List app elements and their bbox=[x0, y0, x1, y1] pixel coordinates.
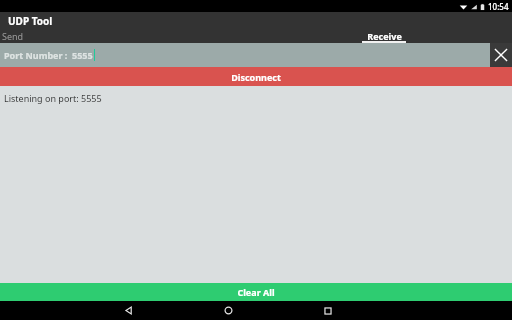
staticText: Send bbox=[2, 30, 24, 42]
button[interactable]: Receive bbox=[256, 29, 512, 43]
button[interactable]: Back bbox=[115, 301, 141, 320]
staticText: Clear All bbox=[237, 286, 275, 298]
staticText: Disconnect bbox=[231, 71, 281, 83]
button[interactable]: Clear All bbox=[0, 283, 512, 301]
staticText: Listening on port: 5555 bbox=[4, 92, 102, 104]
staticText: Port Number : 5555 bbox=[4, 49, 93, 61]
button[interactable]: Port Number : 5555 bbox=[0, 43, 490, 67]
button[interactable]: Clear port number bbox=[490, 43, 512, 67]
button[interactable]: Send bbox=[0, 29, 256, 43]
button[interactable]: Recent apps bbox=[315, 301, 341, 320]
staticText: UDP Tool bbox=[8, 14, 53, 28]
button[interactable]: Disconnect bbox=[0, 67, 512, 86]
button[interactable]: Home bbox=[215, 301, 241, 320]
staticText: Receive bbox=[367, 30, 402, 42]
staticText: 10:54 bbox=[488, 1, 509, 12]
